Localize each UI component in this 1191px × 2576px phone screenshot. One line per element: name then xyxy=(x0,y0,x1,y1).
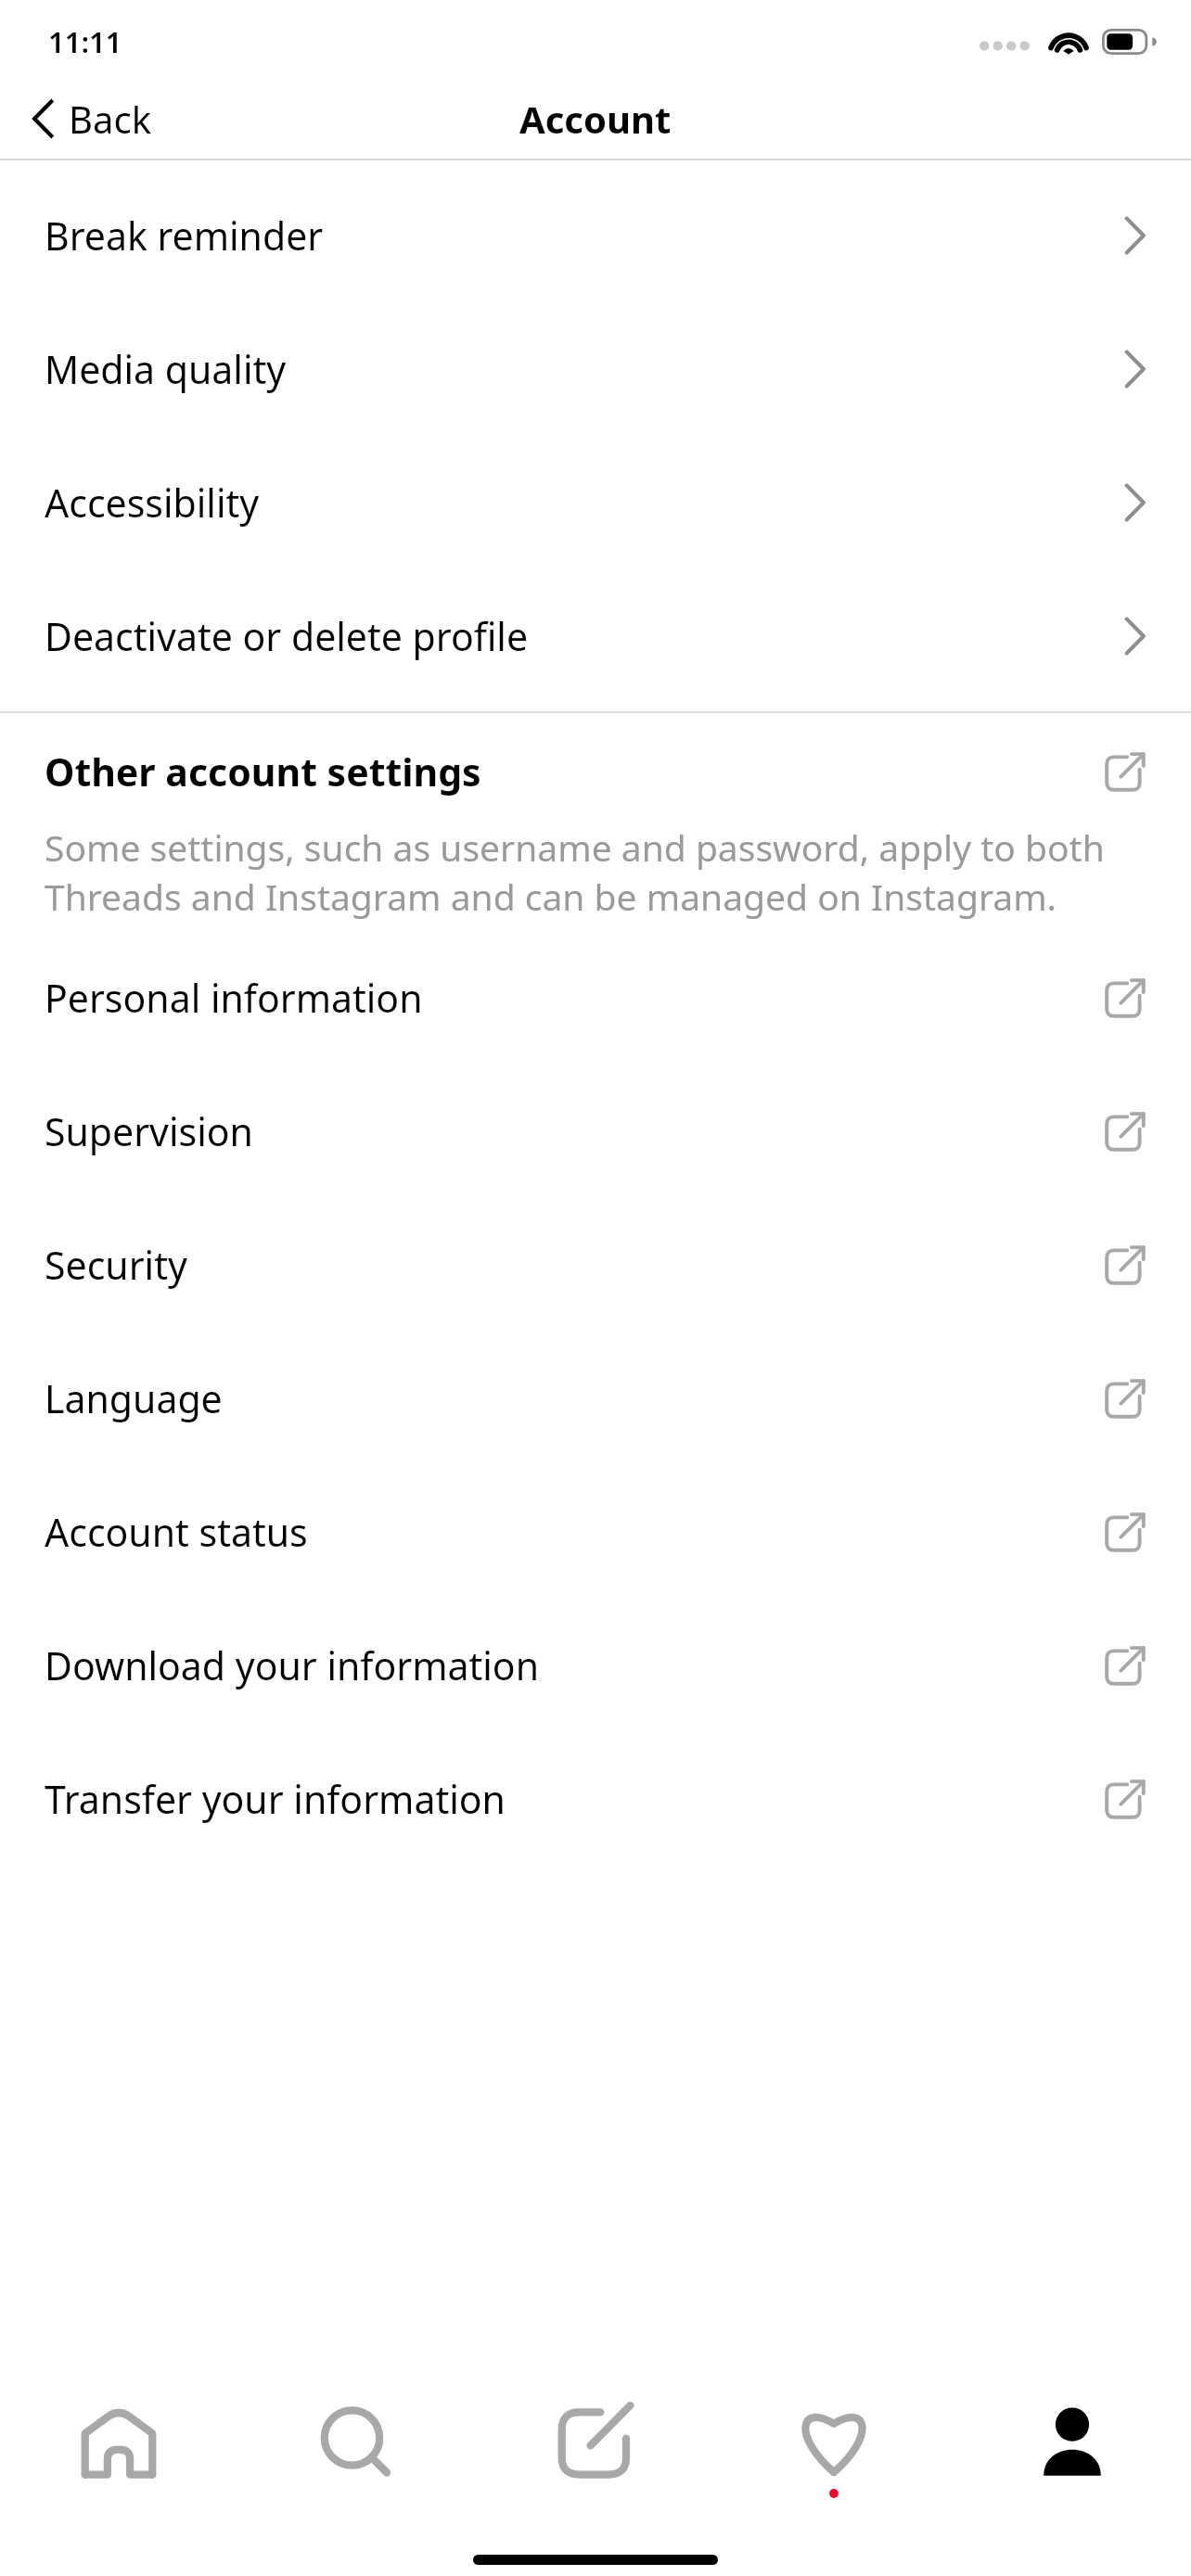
button[interactable]: Compose xyxy=(476,2374,714,2513)
button[interactable]: Break reminder xyxy=(0,169,1191,302)
staticText: Accessibility xyxy=(45,477,1122,529)
staticText: Language xyxy=(45,1372,1104,1424)
staticText: Security xyxy=(45,1239,1104,1291)
button[interactable]: Language xyxy=(0,1332,1191,1465)
button[interactable]: Search xyxy=(237,2374,476,2513)
button[interactable]: Accessibility xyxy=(0,436,1191,569)
staticText: Personal information xyxy=(45,972,1104,1024)
button[interactable]: Media quality xyxy=(0,302,1191,436)
staticText: Transfer your information xyxy=(45,1773,1104,1825)
staticText: 11:11 xyxy=(48,22,122,61)
staticText: Supervision xyxy=(45,1105,1104,1157)
staticText: Media quality xyxy=(45,343,1122,395)
staticText: Account status xyxy=(45,1506,1104,1558)
button[interactable]: Security xyxy=(0,1198,1191,1332)
button[interactable]: Home xyxy=(0,2374,237,2513)
button[interactable]: Back xyxy=(0,86,173,151)
staticText: Deactivate or delete profile xyxy=(45,610,1122,662)
staticText: Break reminder xyxy=(45,210,1122,261)
button[interactable]: Supervision xyxy=(0,1065,1191,1198)
staticText: Back xyxy=(69,94,151,144)
button[interactable]: Activity xyxy=(714,2374,953,2513)
staticText: Other account settings xyxy=(45,746,1104,797)
button[interactable]: Account status xyxy=(0,1465,1191,1599)
staticText: Account xyxy=(519,94,672,144)
staticText: Some settings, such as username and pass… xyxy=(45,823,1150,922)
button[interactable]: Other account settings xyxy=(0,721,1191,823)
button[interactable]: Deactivate or delete profile xyxy=(0,569,1191,703)
button[interactable]: Download your information xyxy=(0,1599,1191,1732)
button[interactable]: Profile xyxy=(953,2374,1191,2513)
button[interactable]: Personal information xyxy=(0,931,1191,1065)
button[interactable]: Transfer your information xyxy=(0,1732,1191,1866)
staticText: Download your information xyxy=(45,1639,1104,1691)
